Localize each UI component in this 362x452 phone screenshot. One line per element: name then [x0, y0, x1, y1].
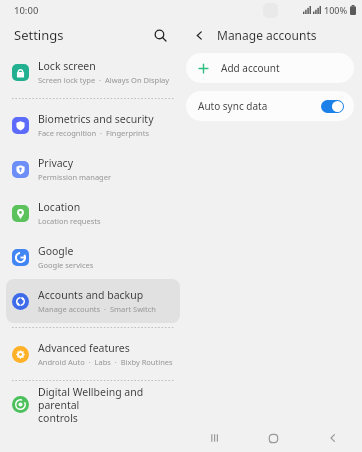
button[interactable]: Recents	[186, 424, 244, 452]
staticText: 10:00	[14, 4, 39, 17]
staticText: Advanced features	[38, 341, 130, 355]
button[interactable]: Add account	[186, 53, 354, 83]
staticText: Digital Wellbeing and parental controls	[38, 385, 180, 424]
staticText: Lock screen	[38, 59, 96, 73]
button[interactable]: Back	[303, 424, 362, 452]
staticText: Accounts and backup	[38, 288, 144, 302]
staticText: Add account	[221, 61, 280, 75]
button[interactable]: Auto sync data toggle	[321, 100, 344, 113]
staticText: Google services	[38, 260, 94, 270]
staticText: Settings	[14, 26, 64, 44]
staticText: Manage accounts · Smart Switch	[38, 304, 156, 314]
button[interactable]: Home	[244, 424, 303, 452]
button[interactable]: Search	[148, 23, 172, 47]
staticText: Face recognition · Fingerprints	[38, 128, 149, 138]
staticText: Permission manager	[38, 172, 112, 182]
staticText: 100%	[324, 4, 348, 16]
staticText: Biometrics and security	[38, 112, 154, 126]
button[interactable]: Accounts and backup	[6, 279, 180, 323]
staticText: Manage accounts	[217, 27, 317, 43]
staticText: Privacy	[38, 156, 74, 170]
staticText: Location	[38, 200, 81, 214]
staticText: Auto sync data	[198, 99, 321, 113]
button[interactable]: Advanced features	[6, 332, 180, 376]
button[interactable]: Auto sync data	[186, 91, 354, 121]
button[interactable]: Biometrics and security	[6, 103, 180, 147]
button[interactable]: Digital Wellbeing and parental controls	[6, 385, 180, 424]
button[interactable]: Location	[6, 191, 180, 235]
button[interactable]: Lock screen	[6, 50, 180, 94]
button[interactable]: Back	[187, 23, 211, 47]
button[interactable]: Privacy	[6, 147, 180, 191]
staticText: Location requests	[38, 216, 101, 226]
button[interactable]: Google	[6, 235, 180, 279]
staticText: Google	[38, 244, 74, 258]
staticText: Android Auto · Labs · Bixby Routines	[38, 357, 173, 367]
staticText: Screen lock type · Always On Display	[38, 75, 170, 85]
